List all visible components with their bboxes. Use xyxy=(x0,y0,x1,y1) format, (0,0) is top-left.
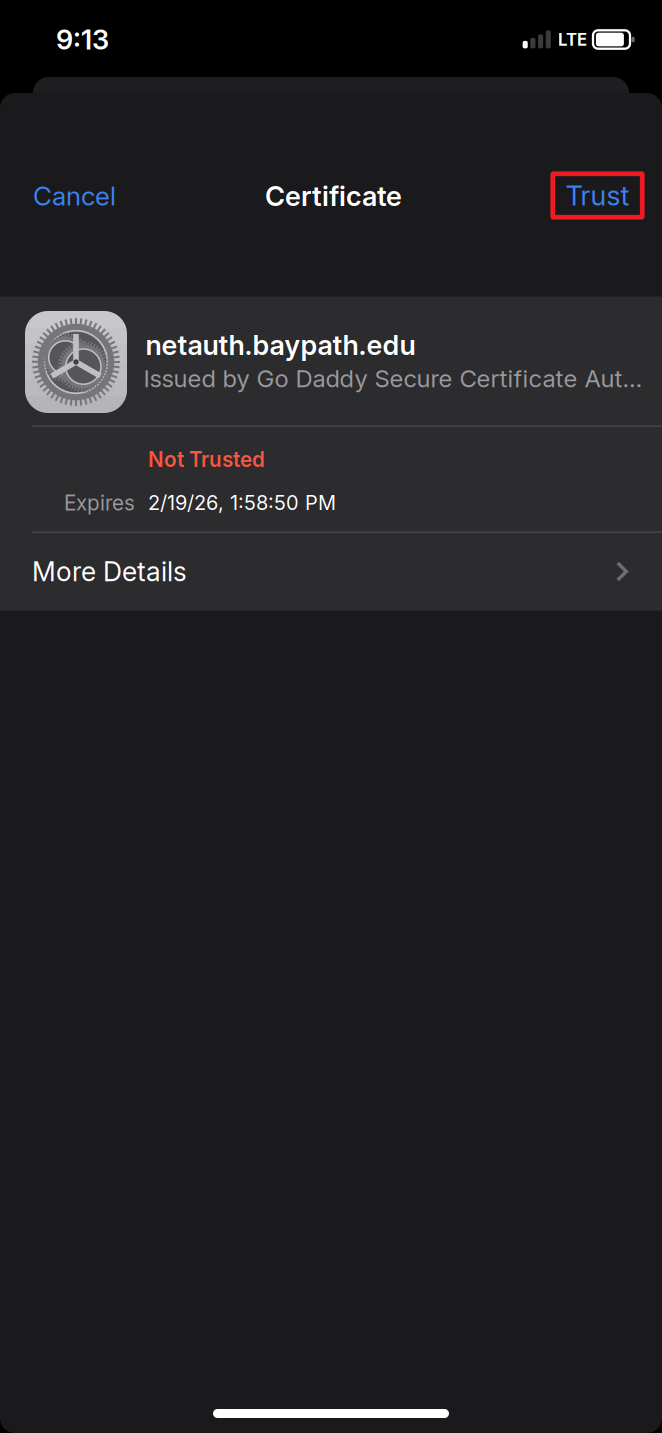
staticText: More Details xyxy=(32,555,187,588)
staticText: LTE xyxy=(558,29,587,50)
staticText: netauth.baypath.edu xyxy=(145,328,415,362)
staticText: Cancel xyxy=(33,180,116,212)
staticText: Expires xyxy=(64,490,135,515)
button[interactable]: More Details xyxy=(0,532,662,610)
staticText: 9:13 xyxy=(56,23,109,56)
staticText: 2/19/26, 1:58:50 PM xyxy=(148,490,336,515)
button[interactable]: Cancel xyxy=(22,168,138,224)
staticText: Issued by Go Daddy Secure Certificate Au… xyxy=(143,364,642,393)
staticText: Not Trusted xyxy=(148,447,265,472)
button[interactable]: Trust xyxy=(550,171,644,220)
staticText: Trust xyxy=(565,179,629,212)
staticText: Certificate xyxy=(265,179,402,213)
